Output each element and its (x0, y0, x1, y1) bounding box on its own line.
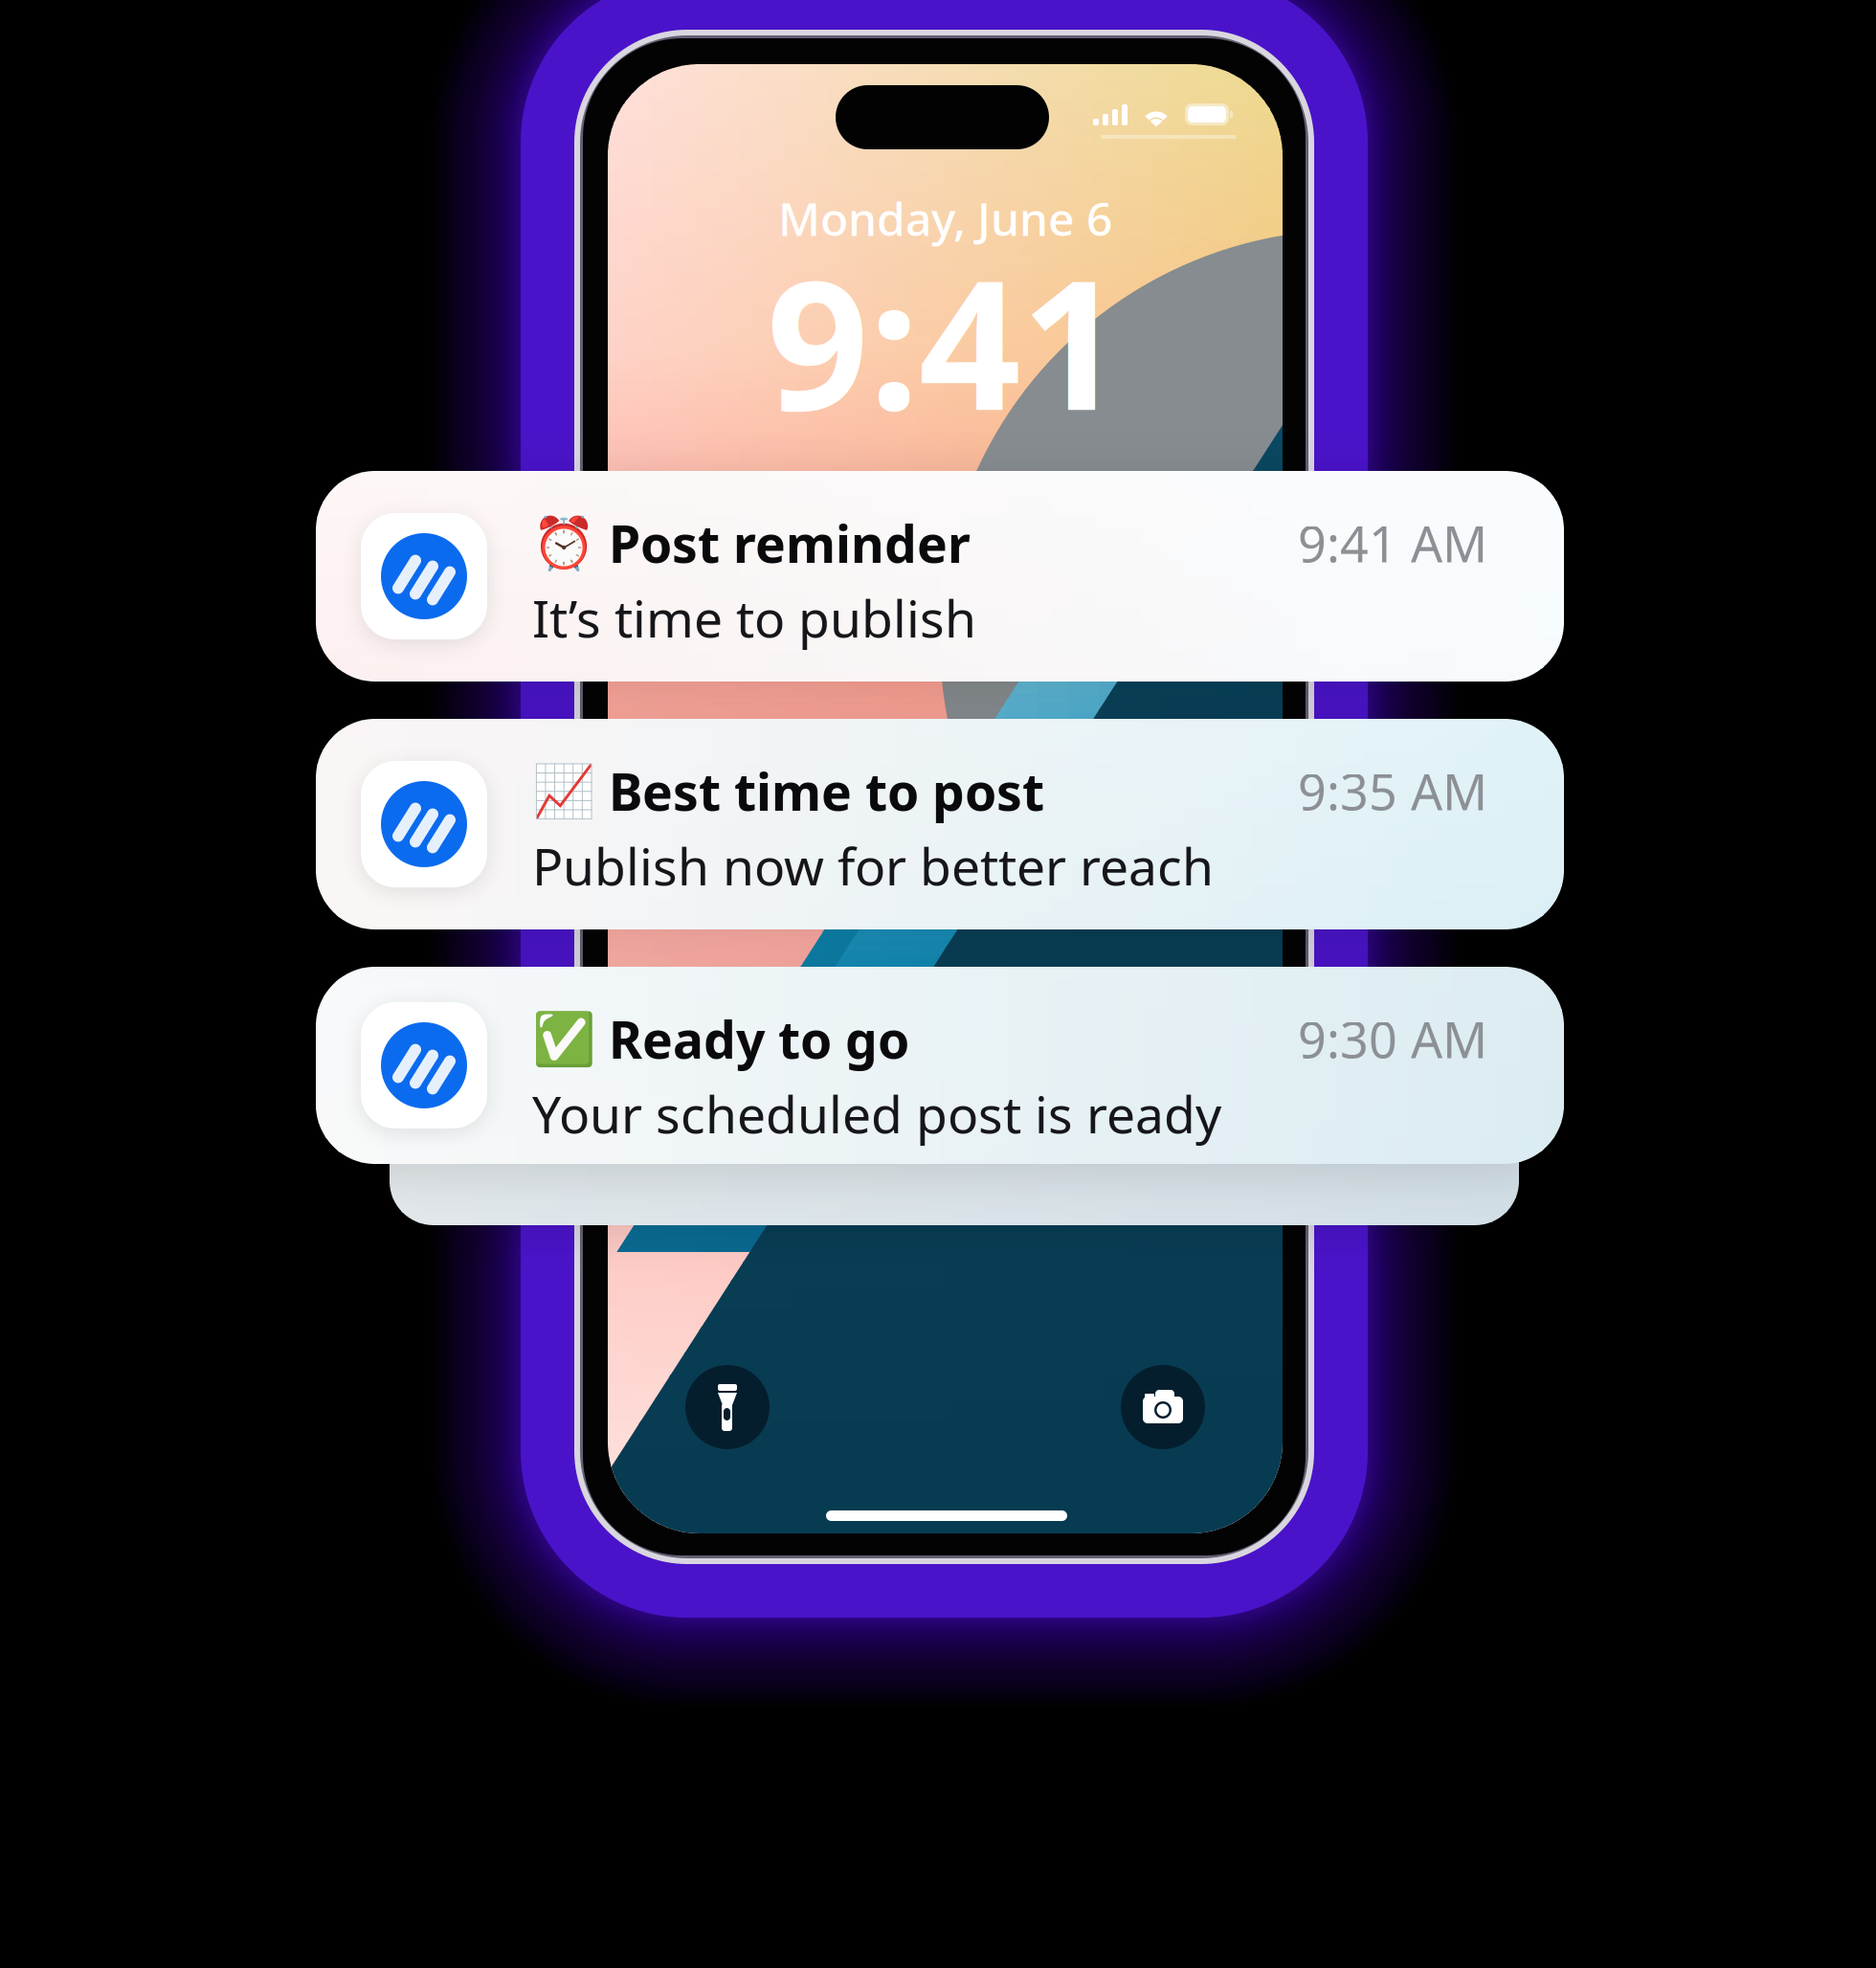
button[interactable]: Flashlight (685, 1365, 770, 1449)
staticText: Your scheduled post is ready (532, 1080, 1221, 1147)
staticText: It’s time to publish (532, 584, 976, 652)
button[interactable]: ✅ (316, 967, 1564, 1164)
staticText: 9:41 AM (1298, 510, 1487, 576)
staticText: 9:41 (767, 222, 1124, 459)
staticText: Monday, June 6 (778, 188, 1112, 249)
staticText: Best time to post (595, 757, 1044, 825)
staticText: Post reminder (595, 509, 971, 577)
staticText: Ready to go (595, 1005, 909, 1073)
button[interactable]: 📈 (316, 719, 1564, 929)
staticText: ⏰ (532, 514, 595, 572)
staticText: ✅ (532, 1010, 595, 1068)
staticText: 📈 (532, 762, 595, 820)
staticText: 9:30 AM (1298, 1006, 1487, 1072)
staticText: 9:35 AM (1298, 758, 1487, 824)
button[interactable]: Camera (1121, 1365, 1205, 1449)
staticText: Publish now for better reach (532, 832, 1214, 900)
button[interactable]: ⏰ (316, 471, 1564, 682)
